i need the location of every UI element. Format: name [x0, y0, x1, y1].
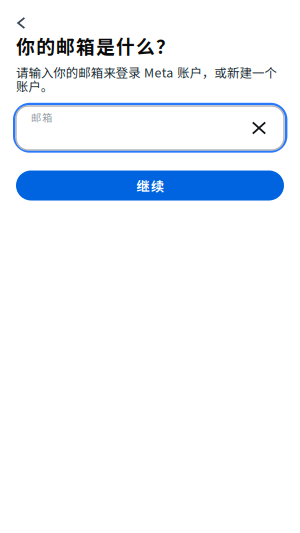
button[interactable]: 邮箱	[16, 106, 284, 150]
button[interactable]: 继续	[16, 170, 284, 200]
button[interactable]: Clear text	[246, 115, 272, 141]
staticText: 邮箱	[31, 110, 52, 124]
staticText: 请输入你的邮箱来登录 Meta 账户，或新建一个 账户。	[16, 63, 276, 95]
staticText: 你的邮箱是什么？	[16, 32, 175, 59]
button[interactable]: Back	[12, 11, 46, 41]
staticText: 继续	[136, 176, 164, 195]
